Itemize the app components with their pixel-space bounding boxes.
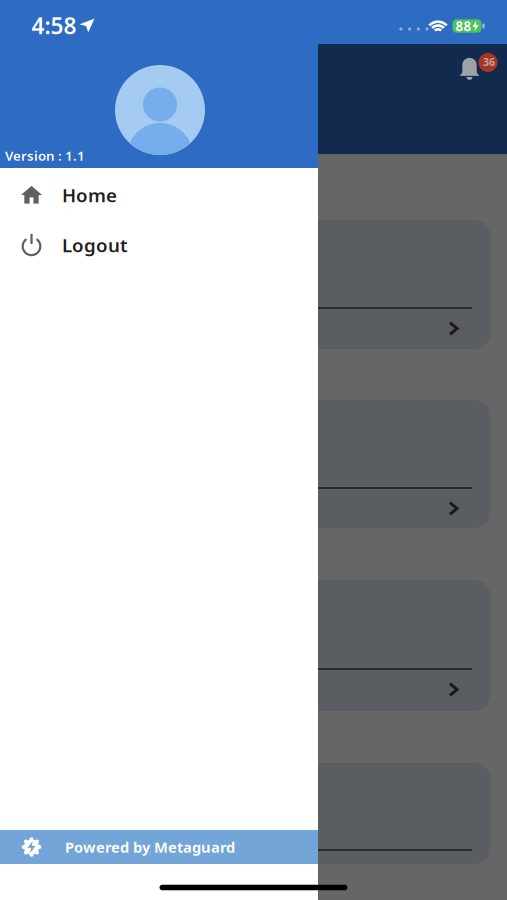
staticText: Logout [62, 233, 128, 257]
staticText: Powered by Metaguard [65, 837, 235, 857]
button[interactable]: Powered by Metaguard [0, 830, 318, 864]
staticText: Version : 1.1 [5, 147, 85, 164]
button[interactable]: Logout [0, 220, 318, 270]
staticText: Home [62, 183, 117, 207]
staticText: 4:58 [31, 10, 76, 40]
button[interactable]: Home [0, 170, 318, 220]
staticText: 88 [455, 17, 471, 35]
staticText: 36 [483, 55, 495, 69]
button[interactable]: Notifications [455, 53, 499, 89]
